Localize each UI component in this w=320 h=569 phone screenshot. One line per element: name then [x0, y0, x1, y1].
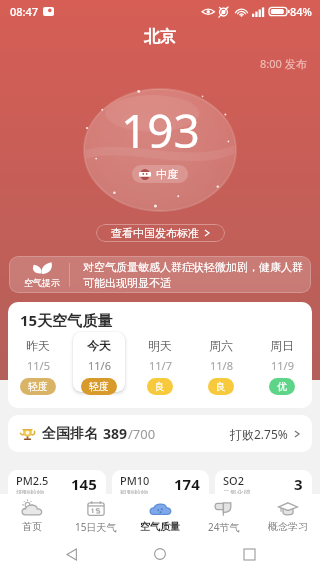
staticText: 145: [71, 474, 97, 494]
button[interactable]: 周日: [251, 332, 312, 398]
staticText: SO2: [223, 473, 244, 488]
button[interactable]: 首页: [0, 494, 64, 539]
staticText: 周日: [270, 338, 294, 353]
staticText: 概念学习: [268, 520, 308, 533]
staticText: 打败2.75%: [230, 426, 288, 442]
staticText: 11/6: [88, 358, 111, 373]
button[interactable]: Home: [143, 539, 177, 569]
staticText: 8:00 发布: [260, 56, 307, 71]
staticText: 84%: [290, 4, 312, 19]
staticText: PM2.5: [16, 473, 49, 488]
button[interactable]: 空气质量: [128, 494, 192, 539]
staticText: 中度: [156, 167, 178, 181]
staticText: 良: [155, 380, 165, 393]
button[interactable]: 周六: [190, 332, 251, 398]
staticText: 11/8: [210, 358, 233, 373]
staticText: 良: [216, 380, 226, 393]
staticText: 11/5: [27, 358, 50, 373]
staticText: 193: [121, 99, 200, 162]
staticText: /700: [128, 425, 156, 443]
staticText: 15日天气: [75, 520, 117, 534]
button[interactable]: 今天: [68, 332, 129, 398]
staticText: 昨天: [26, 338, 50, 353]
staticText: 空气提示: [24, 277, 60, 288]
staticText: 查看中国发布标准: [111, 226, 199, 240]
staticText: 24节气: [208, 520, 240, 534]
staticText: 轻度: [89, 380, 109, 393]
button[interactable]: 15日天气: [64, 494, 128, 539]
staticText: 空气质量: [140, 520, 180, 533]
staticText: 15天空气质量: [20, 310, 113, 330]
button[interactable]: 中度: [132, 165, 188, 183]
button[interactable]: Back: [55, 539, 89, 569]
staticText: 优: [277, 380, 287, 393]
staticText: 轻度: [28, 380, 48, 393]
staticText: 对空气质量敏感人群症状轻微加剧，健康人群可能出现明显不适: [83, 260, 305, 290]
staticText: 细颗粒物: [16, 488, 44, 497]
staticText: 周六: [209, 338, 233, 353]
staticText: 北京: [144, 27, 176, 47]
button[interactable]: 昨天: [8, 332, 68, 398]
staticText: 全国排名: [42, 425, 98, 443]
button[interactable]: 查看中国发布标准: [96, 224, 225, 242]
staticText: 二氧化硫: [223, 488, 251, 497]
staticText: 11/7: [149, 358, 172, 373]
staticText: PM10: [120, 473, 150, 488]
button[interactable]: 全国排名: [8, 415, 312, 452]
staticText: 08:47: [10, 4, 39, 19]
staticText: 3: [294, 474, 303, 494]
staticText: 今天: [87, 338, 111, 353]
button[interactable]: 概念学习: [256, 494, 320, 539]
staticText: 11/9: [271, 358, 294, 373]
staticText: 174: [174, 474, 200, 494]
button[interactable]: 24节气: [192, 494, 256, 539]
button[interactable]: SO2: [215, 470, 312, 516]
button[interactable]: PM10: [112, 470, 209, 516]
staticText: 明天: [148, 338, 172, 353]
staticText: 粗颗粒物: [120, 488, 148, 497]
staticText: 首页: [22, 520, 42, 533]
button[interactable]: 15天空气质量: [8, 302, 312, 408]
staticText: 389: [103, 424, 128, 443]
button[interactable]: PM2.5: [8, 470, 106, 516]
button[interactable]: Recents: [232, 539, 266, 569]
button[interactable]: 明天: [129, 332, 190, 398]
button[interactable]: 空气提示: [9, 256, 311, 293]
